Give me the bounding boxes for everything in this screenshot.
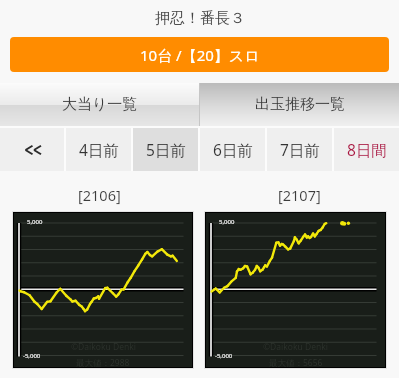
button[interactable] [0, 128, 64, 171]
button[interactable]: 4日前 [66, 128, 131, 171]
staticText: 5,000 [27, 218, 43, 226]
staticText: 5日前 [146, 139, 186, 160]
button[interactable]: 出玉推移一覧 [200, 83, 399, 126]
staticText: [2106] [78, 185, 121, 205]
staticText: 最大値：5656 [269, 357, 323, 367]
staticText: 6日前 [213, 139, 253, 160]
staticText: ©Daikoku Denki [71, 341, 136, 353]
button[interactable]: 8日間 [334, 128, 399, 171]
button[interactable]: 5,000 [14, 213, 192, 367]
button[interactable]: 7日前 [267, 128, 332, 171]
button[interactable]: 5,000 [206, 213, 385, 367]
staticText: -5,000 [23, 352, 41, 360]
button[interactable]: 大当り一覧 [0, 83, 199, 126]
staticText: 7日前 [280, 139, 320, 160]
staticText: 出玉推移一覧 [255, 95, 345, 114]
staticText: 8日間 [347, 139, 387, 160]
staticText: 4日前 [79, 139, 119, 160]
button[interactable]: 10台 /【20】スロ [10, 37, 389, 72]
staticText: 5,000 [219, 218, 235, 226]
button[interactable]: 5日前 [133, 128, 198, 171]
staticText: -5,000 [215, 352, 233, 360]
staticText: 最大値：2988 [76, 357, 130, 367]
staticText: 10台 /【20】スロ [140, 45, 260, 65]
staticText: 大当り一覧 [62, 95, 138, 114]
staticText: 押忍！番長３ [155, 9, 245, 28]
button[interactable]: 6日前 [200, 128, 265, 171]
staticText: [2107] [278, 185, 321, 205]
staticText: ©Daikoku Denki [263, 341, 328, 353]
